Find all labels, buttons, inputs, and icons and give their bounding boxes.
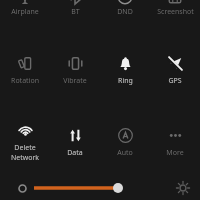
button[interactable]: Auto [100,118,150,166]
button[interactable]: BT [50,0,100,30]
button[interactable]: Rotation [0,46,50,94]
button[interactable]: Brightness slider [34,179,169,197]
staticText: Vibrate [63,76,87,86]
staticText: Ring [118,76,133,86]
button[interactable]: Brightness low [15,181,29,195]
staticText: Screenshot [157,7,194,17]
staticText: DND [117,7,133,17]
button[interactable]: DND [100,0,150,30]
button[interactable]: Delete Network [0,118,50,166]
button[interactable]: Brightness high [173,178,193,198]
button[interactable]: Screenshot [150,0,200,30]
button[interactable]: Data [50,118,100,166]
button[interactable]: Airplane [0,0,50,30]
button[interactable]: Vibrate [50,46,100,94]
staticText: Delete Network [0,143,50,163]
staticText: More [166,148,184,158]
button[interactable]: GPS [150,46,200,94]
staticText: BT [71,7,80,17]
staticText: Data [67,148,83,158]
button[interactable]: Ring [100,46,150,94]
staticText: Airplane [11,7,39,17]
staticText: Auto [117,148,133,158]
button[interactable]: More [150,118,200,166]
staticText: Rotation [11,76,39,86]
staticText: GPS [168,76,182,86]
